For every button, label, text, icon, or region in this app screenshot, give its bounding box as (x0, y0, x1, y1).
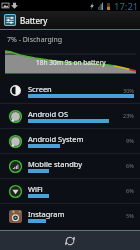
button[interactable]: Instagram (0, 204, 140, 228)
staticText: 6% (126, 187, 134, 194)
staticText: 7% - Discharging (7, 35, 63, 45)
staticText: 9% (126, 137, 134, 144)
staticText: WiFi (28, 184, 126, 194)
button[interactable]: Android OS (0, 104, 140, 128)
button[interactable]: WiFi (0, 179, 140, 203)
staticText: Android System (28, 134, 126, 144)
staticText: 17:21 (114, 0, 139, 11)
staticText: Android OS (28, 109, 123, 119)
staticText: Screen (28, 84, 123, 94)
button[interactable]: Android System (0, 129, 140, 153)
button[interactable]: Battery (0, 11, 140, 29)
staticText: Instagram (28, 209, 126, 219)
staticText: 30% (123, 87, 134, 94)
staticText: Battery (20, 15, 48, 26)
staticText: Mobile standby (28, 159, 126, 169)
button[interactable]: Screen (0, 78, 140, 103)
button[interactable]: Refresh (62, 233, 78, 249)
staticText: 18h 30m 9s on battery (36, 58, 106, 67)
button[interactable]: Mobile standby (0, 154, 140, 178)
staticText: 5% (126, 212, 134, 219)
staticText: 6% (126, 162, 134, 169)
staticText: 23% (123, 112, 134, 119)
